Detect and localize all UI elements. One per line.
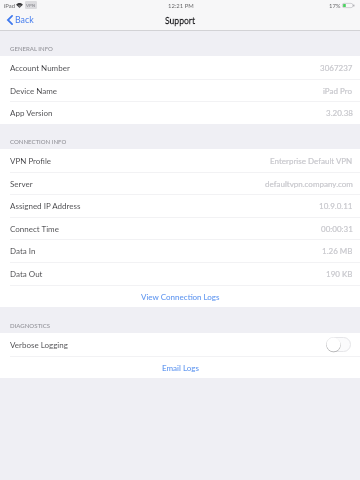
staticText: iPad (4, 2, 16, 9)
staticText: VPN (26, 2, 36, 8)
button[interactable]: View Connection Logs (0, 285, 360, 308)
staticText: App Version (10, 108, 53, 118)
staticText: defaultvpn.company.com (265, 179, 353, 189)
staticText: 3.20.38 (326, 108, 353, 118)
button[interactable]: App Version (0, 101, 360, 124)
staticText: Support (165, 16, 196, 26)
staticText: DIAGNOSTICS (10, 322, 51, 329)
staticText: Verbose Logging (10, 340, 68, 350)
staticText: Email Logs (162, 363, 199, 373)
button[interactable]: Email Logs (0, 356, 360, 379)
staticText: 10.9.0.11 (319, 201, 353, 211)
button[interactable]: Verbose Logging toggle, off (326, 337, 351, 352)
staticText: VPN Profile (10, 156, 51, 166)
staticText: Data In (10, 246, 36, 256)
staticText: Data Out (10, 269, 43, 279)
staticText: 12:21 PM (168, 2, 194, 9)
staticText: Server (10, 179, 33, 189)
staticText: Enterprise Default VPN (270, 156, 353, 166)
staticText: Back (15, 14, 34, 25)
staticText: Account Number (10, 63, 70, 73)
staticText: 17% (329, 2, 341, 9)
button[interactable]: Device Name (0, 79, 360, 102)
button[interactable]: VPN Profile (0, 149, 360, 172)
staticText: CONNECTION INFO (10, 138, 67, 145)
button[interactable]: Assigned IP Address (0, 194, 360, 217)
button[interactable]: Connect Time (0, 217, 360, 240)
staticText: 3067237 (320, 63, 353, 73)
button[interactable]: Server (0, 172, 360, 195)
button[interactable]: Back (7, 9, 360, 30)
staticText: 190 KB (326, 269, 353, 279)
staticText: 1.26 MB (322, 246, 353, 256)
staticText: 00:00:31 (321, 224, 353, 234)
staticText: View Connection Logs (141, 292, 220, 302)
staticText: Assigned IP Address (10, 201, 81, 211)
button[interactable]: Account Number (0, 56, 360, 79)
staticText: iPad Pro (323, 86, 353, 96)
button[interactable]: Data In (0, 239, 360, 262)
staticText: Device Name (10, 86, 57, 96)
staticText: GENERAL INFO (10, 45, 53, 52)
button[interactable]: Data Out (0, 262, 360, 285)
staticText: Connect Time (10, 224, 59, 234)
